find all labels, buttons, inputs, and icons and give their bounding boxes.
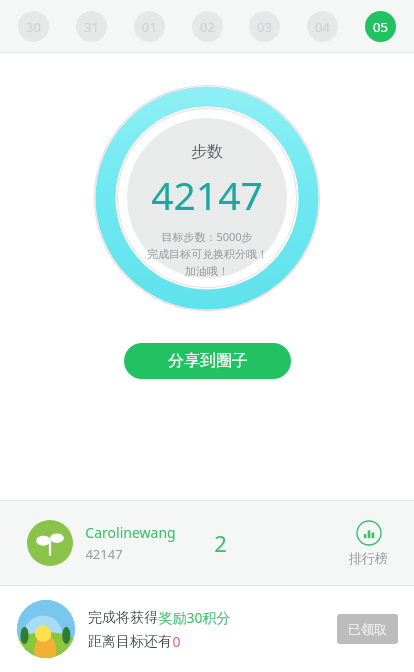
staticText: 30 <box>26 18 41 36</box>
staticText: 目标步数：5000步 <box>161 229 253 244</box>
button[interactable]: 01 <box>134 11 165 42</box>
staticText: 31 <box>84 18 99 36</box>
staticText: 完成将获得 <box>88 609 158 627</box>
staticText: 01 <box>142 18 157 36</box>
button[interactable]: 31 <box>76 11 107 42</box>
button[interactable]: 02 <box>192 11 223 42</box>
button[interactable]: 分享到圈子 <box>124 343 291 379</box>
staticText: 42147 <box>85 545 123 563</box>
staticText: 奖励30积分 <box>158 608 231 627</box>
button[interactable]: Carolinewang <box>0 501 414 585</box>
staticText: 42147 <box>151 168 263 221</box>
staticText: Carolinewang <box>85 523 176 542</box>
button[interactable]: 排行榜 <box>349 520 388 566</box>
button[interactable]: 30 <box>18 11 49 42</box>
staticText: 04 <box>315 18 330 36</box>
button[interactable]: 05 <box>365 11 396 42</box>
staticText: 加油哦！ <box>185 264 229 278</box>
button[interactable]: 已领取 <box>337 614 398 644</box>
staticText: 0 <box>172 632 181 651</box>
staticText: 排行榜 <box>349 550 388 566</box>
staticText: 05 <box>373 18 388 36</box>
button[interactable]: 03 <box>249 11 280 42</box>
staticText: 分享到圈子 <box>168 351 248 371</box>
staticText: 2 <box>214 528 227 558</box>
staticText: 02 <box>200 18 215 36</box>
staticText: 完成目标可兑换积分哦！ <box>147 247 268 261</box>
staticText: 03 <box>257 18 272 36</box>
button[interactable]: 04 <box>307 11 338 42</box>
staticText: 已领取 <box>348 621 387 637</box>
staticText: 距离目标还有 <box>88 633 172 651</box>
staticText: 步数 <box>191 142 223 162</box>
